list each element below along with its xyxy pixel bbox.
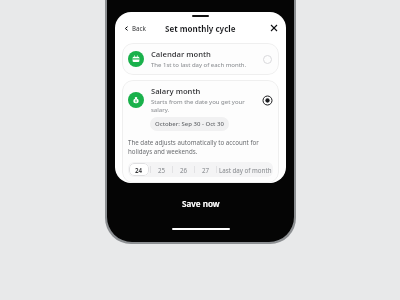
staticText: The 1st to last day of each month. (151, 61, 247, 69)
button[interactable]: October: Sep 30 - Oct 30 (150, 117, 229, 131)
staticText: The date adjusts automatically to accoun… (128, 138, 273, 156)
staticText: Starts from the date you get your salary… (151, 98, 262, 114)
button[interactable]: Last day of month (218, 163, 272, 176)
staticText: 26 (180, 166, 188, 174)
staticText: 27 (202, 166, 210, 174)
staticText: Set monthly cycle (165, 23, 236, 34)
staticText: Calendar month (151, 49, 211, 59)
staticText: October: Sep 30 - Oct 30 (155, 120, 224, 128)
button[interactable]: Save now (107, 192, 294, 214)
button[interactable]: 24 (129, 163, 149, 176)
button[interactable]: Back (121, 22, 150, 34)
button[interactable]: Calendar month (122, 43, 279, 75)
staticText: Salary month (151, 86, 201, 96)
staticText: 24 (135, 166, 143, 174)
button[interactable]: 25 (152, 163, 171, 176)
button[interactable]: 26 (174, 163, 193, 176)
button[interactable]: Salary month (122, 80, 279, 183)
staticText: Back (132, 24, 147, 32)
button[interactable]: 27 (196, 163, 215, 176)
staticText: Save now (182, 198, 220, 209)
staticText: Last day of month (219, 166, 272, 174)
staticText: 25 (158, 166, 166, 174)
button[interactable]: Close (268, 22, 280, 34)
